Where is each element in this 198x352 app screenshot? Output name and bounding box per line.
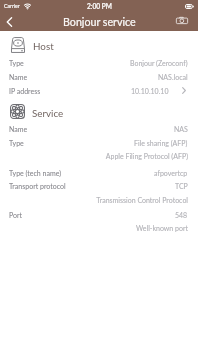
- staticText: Transport protocol: [9, 182, 66, 190]
- button[interactable]: Port: [0, 208, 198, 221]
- staticText: Name: [9, 125, 28, 133]
- button[interactable]: Type: [0, 56, 198, 69]
- button[interactable]: Back: [0, 12, 20, 31]
- staticText: NAS.local: [158, 73, 188, 81]
- staticText: Host: [33, 40, 54, 52]
- button[interactable]: Name: [0, 70, 198, 83]
- staticText: TCP: [175, 182, 188, 190]
- button[interactable]: Transport protocol: [0, 179, 198, 192]
- staticText: Bonjour (Zeroconf): [130, 59, 188, 67]
- staticText: Carrier: [4, 3, 20, 9]
- staticText: Port: [9, 211, 23, 219]
- staticText: 548: [175, 211, 188, 219]
- staticText: Type: [9, 139, 24, 147]
- staticText: Well-known port: [9, 224, 188, 232]
- staticText: Apple Filing Protocol (AFP): [9, 152, 188, 160]
- button[interactable]: Type (tech name): [0, 166, 198, 179]
- staticText: File sharing (AFP): [134, 139, 188, 147]
- staticText: Transmission Control Protocol: [9, 196, 188, 204]
- staticText: afpovertcp: [154, 169, 188, 177]
- staticText: IP address: [9, 87, 41, 95]
- staticText: Type: [9, 59, 24, 67]
- button[interactable]: Camera: [176, 12, 198, 31]
- staticText: Bonjour service: [63, 15, 136, 28]
- staticText: 2:00 PM: [87, 2, 112, 10]
- staticText: 10.10.10.10: [131, 87, 169, 95]
- button[interactable]: IP address: [0, 84, 198, 97]
- staticText: Name: [9, 73, 28, 81]
- staticText: NAS: [174, 125, 188, 133]
- button[interactable]: Type: [0, 136, 198, 149]
- staticText: Service: [32, 107, 64, 119]
- staticText: Type (tech name): [9, 169, 62, 177]
- button[interactable]: Name: [0, 122, 198, 135]
